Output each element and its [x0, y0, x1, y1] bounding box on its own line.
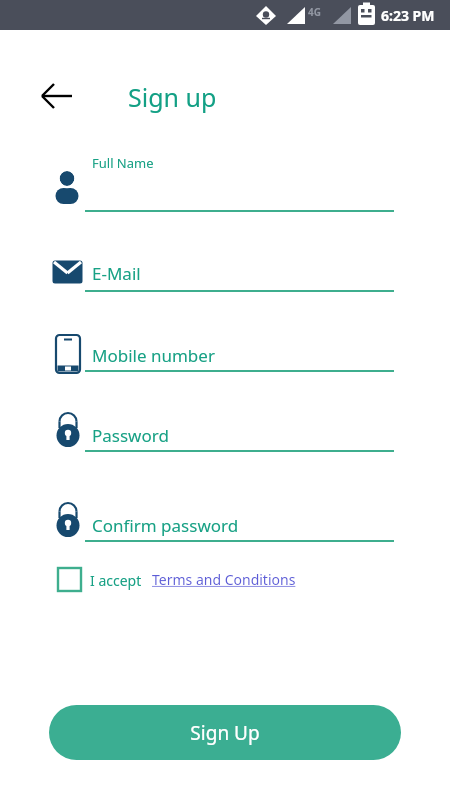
button[interactable]: I accept Terms and Conditions checkbox [52, 562, 86, 596]
staticText: Terms and Conditions [152, 570, 296, 589]
staticText: Sign Up [190, 720, 260, 746]
staticText: Sign up [128, 80, 217, 114]
button[interactable] [45, 494, 401, 546]
button[interactable]: Sign Up [49, 705, 401, 760]
button[interactable]: Terms and Conditions [150, 566, 298, 593]
staticText: 6:23 PM [381, 6, 435, 25]
button[interactable] [45, 249, 401, 296]
button[interactable] [45, 327, 401, 376]
button[interactable] [45, 404, 401, 456]
button[interactable] [45, 162, 401, 216]
staticText: 4G [308, 5, 321, 19]
staticText: Password [92, 424, 169, 447]
staticText: I accept [90, 571, 142, 590]
staticText: E-Mail [92, 262, 141, 285]
staticText: Full Name [92, 154, 154, 172]
staticText: Mobile number [92, 344, 215, 367]
button[interactable]: Back [34, 72, 82, 120]
staticText: Confirm password [92, 514, 239, 537]
